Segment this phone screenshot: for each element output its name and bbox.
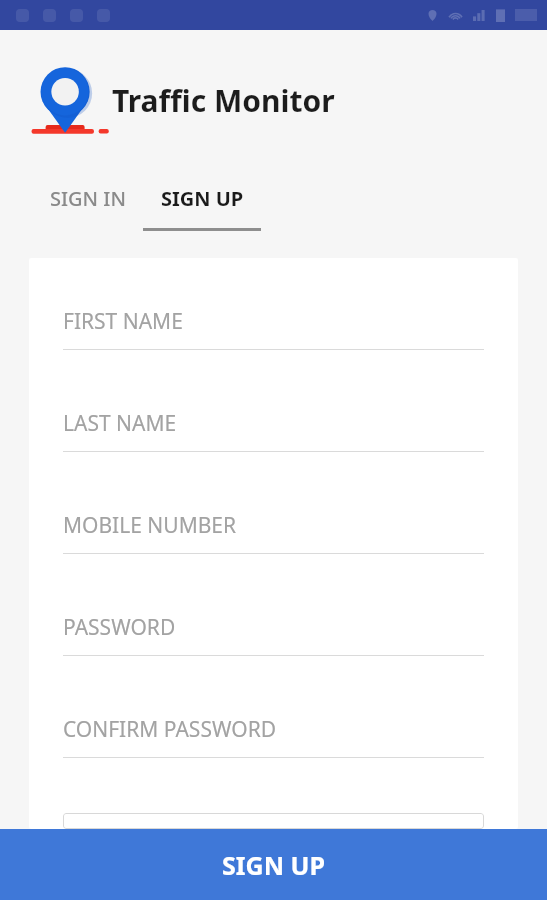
button[interactable]: FIRST NAME — [29, 281, 518, 383]
staticText: LAST NAME — [63, 409, 177, 438]
staticText: CONFIRM PASSWORD — [63, 715, 277, 744]
button[interactable] — [63, 813, 484, 829]
button[interactable]: PASSWORD — [29, 587, 518, 689]
button[interactable]: SIGN UP — [143, 170, 261, 258]
staticText: Traffic Monitor — [112, 80, 335, 121]
button[interactable]: MOBILE NUMBER — [29, 485, 518, 587]
staticText: SIGN UP — [161, 185, 244, 212]
staticText: SIGN UP — [222, 848, 325, 882]
button[interactable]: LAST NAME — [29, 383, 518, 485]
staticText: FIRST NAME — [63, 307, 183, 336]
staticText: PASSWORD — [63, 613, 176, 642]
button[interactable]: SIGN IN — [33, 170, 143, 258]
button[interactable]: CONFIRM PASSWORD — [29, 689, 518, 791]
staticText: MOBILE NUMBER — [63, 511, 237, 540]
staticText: SIGN IN — [50, 185, 126, 212]
button[interactable]: SIGN UP — [0, 829, 547, 900]
